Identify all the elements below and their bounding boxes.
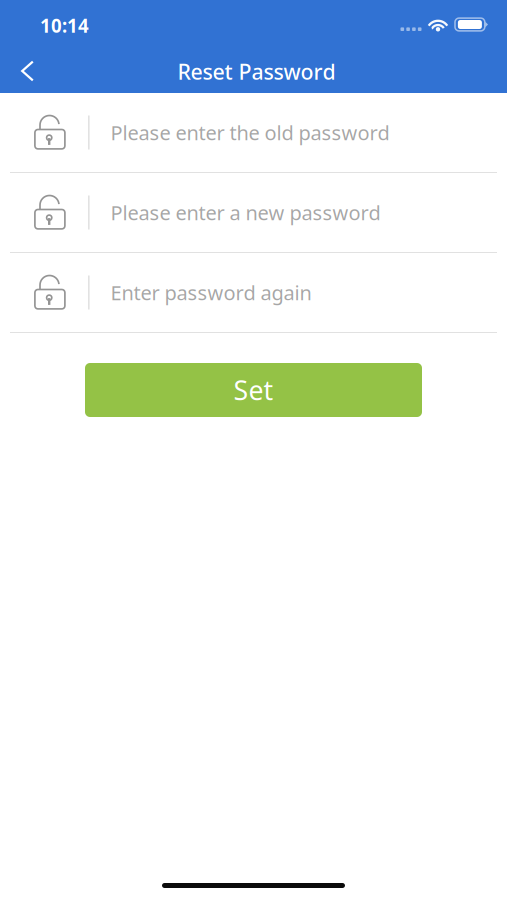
staticText: Please enter a new password — [111, 199, 381, 226]
button[interactable]: Enter password again — [0, 253, 507, 332]
staticText: Reset Password — [177, 57, 335, 86]
staticText: Please enter the old password — [111, 119, 390, 146]
button[interactable]: Set — [85, 363, 422, 417]
staticText: Set — [233, 372, 273, 408]
staticText: Enter password again — [111, 279, 312, 306]
button[interactable]: Back — [0, 46, 51, 93]
staticText: 10:14 — [40, 13, 89, 38]
button[interactable]: Please enter a new password — [0, 173, 507, 252]
button[interactable]: Please enter the old password — [0, 93, 507, 172]
